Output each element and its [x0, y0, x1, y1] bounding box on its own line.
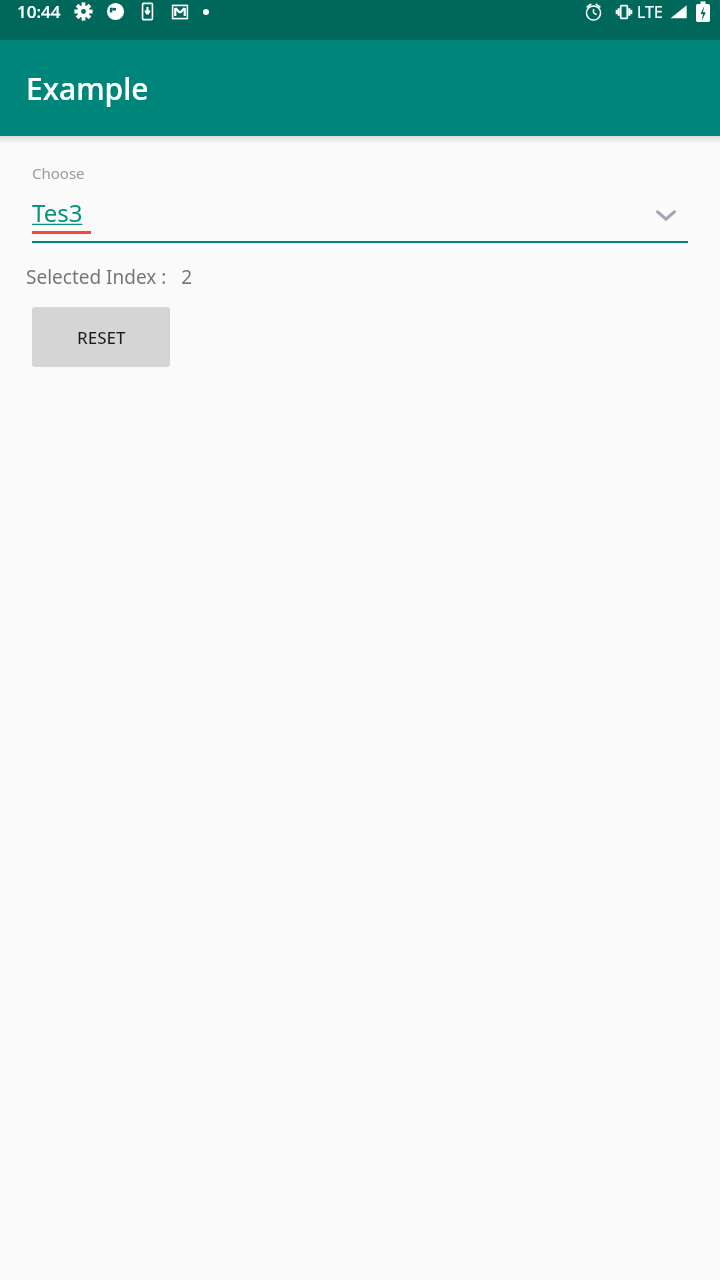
staticText: Tes3 [32, 196, 83, 229]
staticText: Selected Index : 2 [26, 264, 193, 290]
other: Open dropdown [654, 203, 678, 227]
button[interactable]: RESET [32, 307, 170, 367]
staticText: 10:44 [17, 0, 61, 23]
staticText: Example [26, 68, 149, 109]
staticText: LTE [637, 1, 663, 23]
staticText: RESET [77, 326, 126, 349]
staticText: Choose [32, 163, 85, 183]
button[interactable]: Tes3 [0, 193, 720, 237]
